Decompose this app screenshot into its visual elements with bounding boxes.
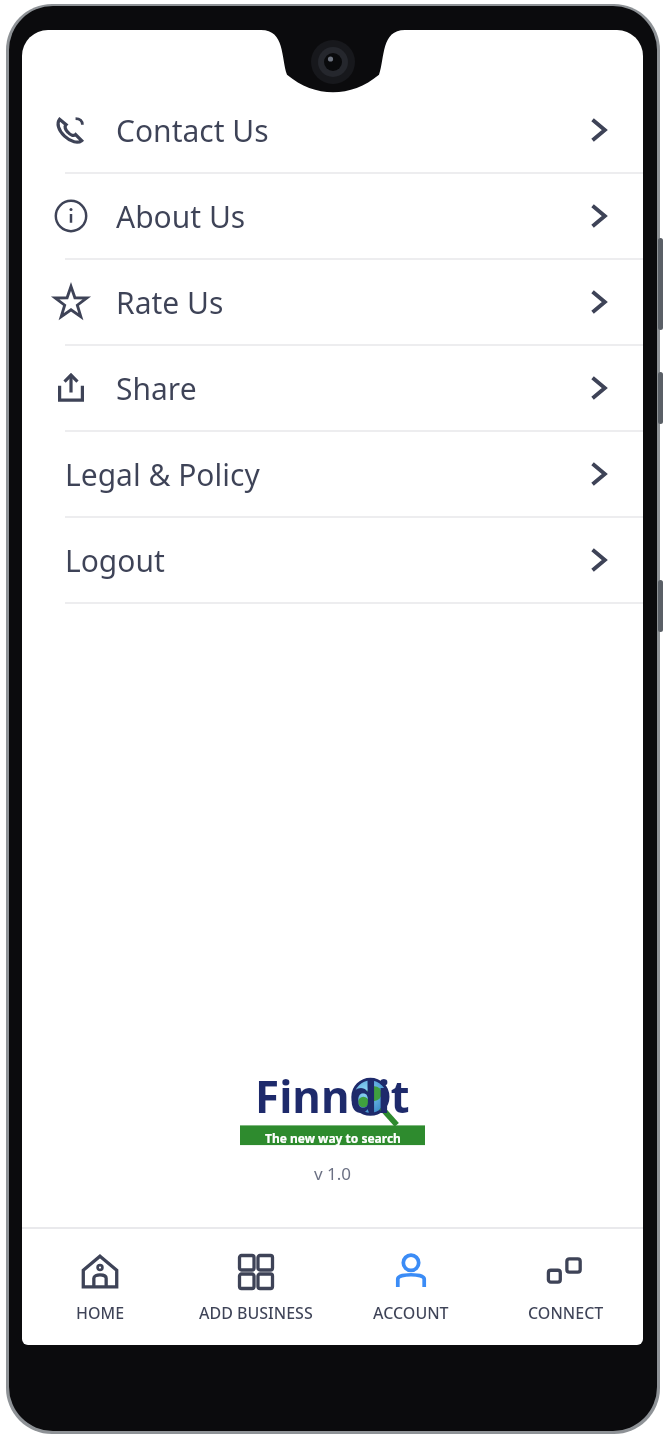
staticText: ADD BUSINESS (199, 1302, 313, 1324)
button[interactable]: ACCOUNT (333, 1229, 488, 1345)
button[interactable]: Rate Us (22, 260, 643, 344)
staticText: v 1.0 (22, 1162, 643, 1185)
staticText: Rate Us (116, 282, 581, 323)
staticText: The new way to search (265, 1130, 401, 1146)
staticText: Contact Us (116, 110, 581, 151)
button[interactable]: HOME (22, 1229, 178, 1345)
staticText: HOME (76, 1302, 125, 1324)
button[interactable]: ADD BUSINESS (178, 1229, 333, 1345)
staticText: Legal & Policy (65, 454, 581, 495)
button[interactable]: CONNECT (488, 1229, 643, 1345)
button[interactable]: Legal & Policy (22, 432, 643, 516)
button[interactable]: Contact Us (22, 88, 643, 172)
button[interactable]: About Us (22, 174, 643, 258)
staticText: About Us (116, 196, 581, 237)
staticText: Finndit (255, 1066, 410, 1126)
staticText: CONNECT (528, 1302, 604, 1324)
staticText: Share (116, 368, 581, 409)
staticText: Logout (65, 540, 581, 581)
staticText: ACCOUNT (373, 1302, 449, 1324)
button[interactable]: Logout (22, 518, 643, 602)
button[interactable]: Share (22, 346, 643, 430)
